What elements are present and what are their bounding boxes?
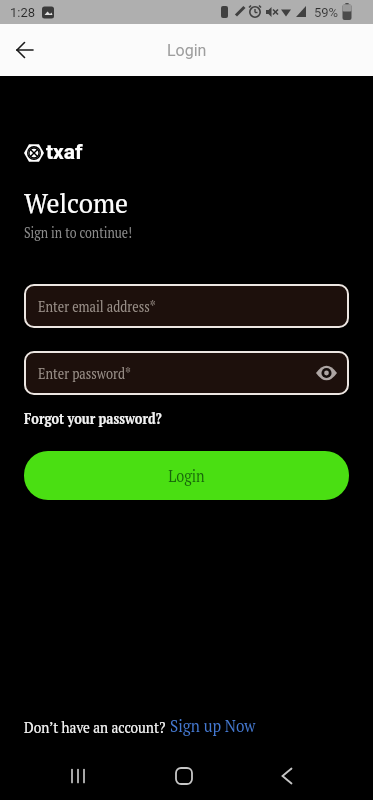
button[interactable]: Sign up Now — [170, 713, 256, 737]
staticText: Enter password* — [38, 363, 131, 383]
staticText: 59% — [314, 5, 339, 20]
staticText: Sign in to continue! — [24, 223, 133, 242]
button[interactable] — [69, 769, 89, 783]
staticText: Don’t have an account? — [24, 716, 169, 737]
button[interactable] — [316, 366, 337, 380]
button[interactable]: Enter password* — [24, 351, 349, 395]
staticText: Login — [168, 464, 205, 487]
button[interactable] — [175, 767, 193, 785]
staticText: Login — [167, 41, 207, 60]
button[interactable]: Login — [24, 451, 349, 500]
button[interactable] — [280, 767, 294, 785]
button[interactable]: Enter email address* — [24, 284, 349, 328]
staticText: txaf — [46, 140, 83, 165]
staticText: 1:28 — [10, 5, 36, 20]
button[interactable]: Forgot your password? — [24, 408, 187, 428]
button[interactable] — [16, 41, 34, 59]
staticText: Enter email address* — [38, 296, 156, 316]
staticText: Welcome — [24, 184, 129, 221]
